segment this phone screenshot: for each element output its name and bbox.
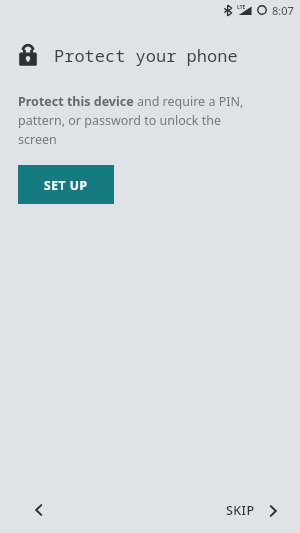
- staticText: Protect your phone: [54, 44, 238, 67]
- staticText: LTE: [237, 4, 246, 11]
- other: Lock: [17, 43, 39, 67]
- staticText: SKIP: [226, 502, 255, 519]
- button[interactable]: SET UP: [18, 165, 114, 204]
- staticText: SET UP: [44, 177, 88, 193]
- button[interactable]: Back: [22, 493, 56, 527]
- staticText: 8:07: [272, 3, 294, 18]
- staticText: Protect this device and require a PIN, p…: [18, 93, 260, 148]
- button[interactable]: SKIP: [220, 494, 286, 527]
